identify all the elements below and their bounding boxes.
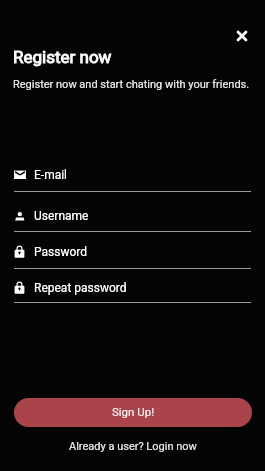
staticText: Repeat password — [34, 281, 127, 295]
button[interactable] — [0, 274, 265, 303]
staticText: E-mail — [34, 168, 68, 182]
button[interactable]: Already a user? Login now — [0, 436, 265, 456]
button[interactable] — [0, 161, 265, 192]
staticText: Sign Up! — [112, 405, 155, 418]
button[interactable]: Close — [230, 24, 254, 48]
button[interactable] — [0, 202, 265, 232]
staticText: Already a user? Login now — [69, 440, 197, 453]
button[interactable] — [0, 238, 265, 269]
staticText: Username — [34, 209, 89, 223]
staticText: Password — [34, 245, 88, 259]
staticText: Register now — [13, 47, 112, 67]
staticText: Register now and start chating with your… — [13, 78, 250, 91]
button[interactable]: Sign Up! — [14, 398, 252, 427]
